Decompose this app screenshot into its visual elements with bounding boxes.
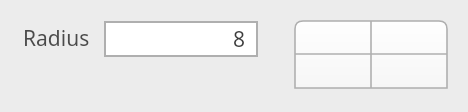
button[interactable]: 8: [104, 21, 258, 57]
staticText: 8: [233, 25, 246, 54]
button[interactable]: Corner radius preview: [295, 21, 447, 88]
staticText: Radius: [23, 24, 90, 53]
